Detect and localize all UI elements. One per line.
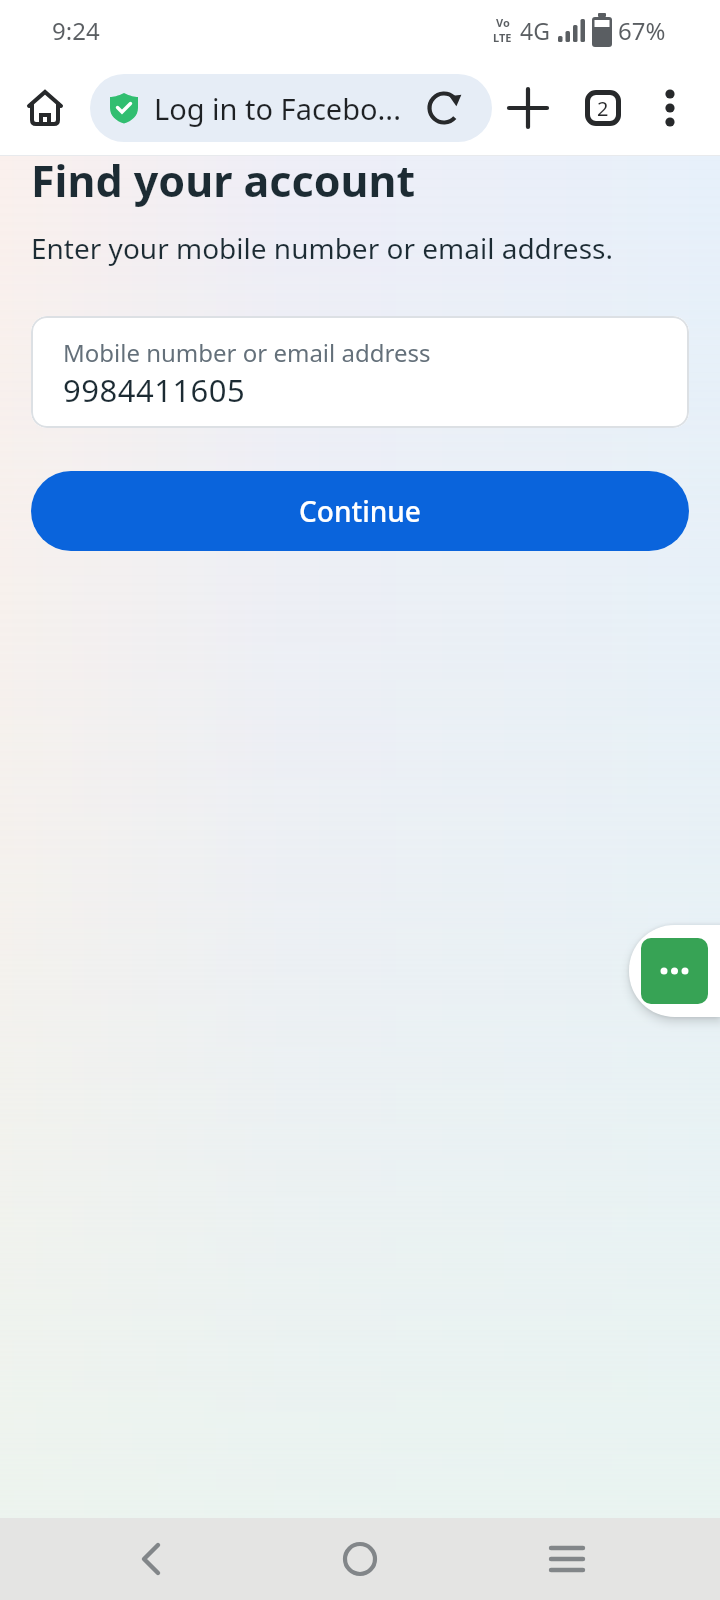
staticText: 2 (597, 95, 609, 122)
button[interactable] (629, 925, 720, 1017)
button[interactable] (537, 1529, 597, 1589)
staticText: Continue (299, 492, 421, 530)
staticText: 9:24 (52, 14, 100, 47)
button[interactable]: Log in to Facebo... (90, 74, 492, 142)
button[interactable] (642, 60, 698, 155)
staticText: 67% (618, 14, 666, 47)
button[interactable] (330, 1529, 390, 1589)
staticText: Mobile number or email address (63, 336, 431, 369)
button[interactable]: 2 (564, 60, 642, 155)
button[interactable] (122, 1529, 182, 1589)
button[interactable] (0, 60, 90, 155)
staticText: LTE (493, 30, 512, 45)
staticText: Enter your mobile number or email addres… (31, 229, 613, 267)
staticText: 4G (520, 15, 550, 46)
staticText: Log in to Facebo... (154, 89, 426, 128)
staticText: 9984411605 (63, 369, 246, 411)
staticText: Vo (496, 15, 510, 30)
button[interactable] (492, 60, 564, 155)
button[interactable]: Continue (31, 471, 689, 551)
staticText: Find your account (31, 151, 416, 210)
button[interactable]: Mobile number or email address (31, 316, 689, 428)
